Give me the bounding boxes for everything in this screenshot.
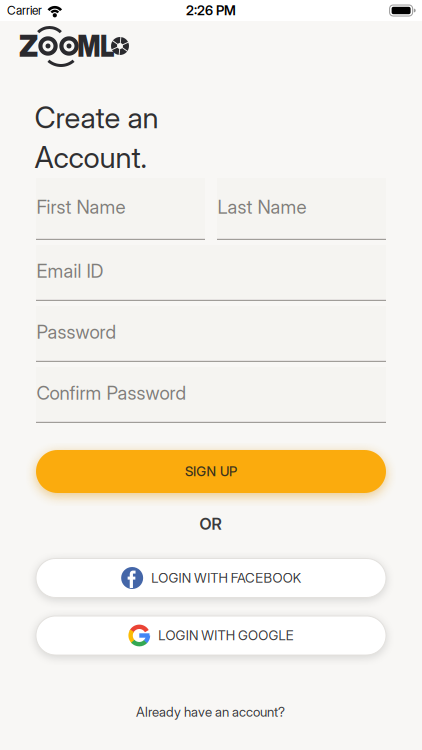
staticText: SIGN UP xyxy=(185,464,237,479)
staticText: Already have an account? xyxy=(136,704,285,720)
button[interactable]: SIGN UP xyxy=(36,450,386,493)
staticText: OR xyxy=(199,515,221,533)
staticText: Password xyxy=(36,321,116,343)
staticText: 2:26 PM xyxy=(186,3,236,18)
button[interactable]: Already have an account? xyxy=(136,704,285,720)
staticText: Create an Account. xyxy=(34,100,158,175)
button[interactable]: LOGIN WITH GOOGLE xyxy=(36,616,386,655)
staticText: ML xyxy=(74,29,118,63)
staticText: Z xyxy=(19,29,38,63)
staticText: LOGIN WITH GOOGLE xyxy=(158,628,294,643)
staticText: Email ID xyxy=(36,260,103,282)
staticText: First Name xyxy=(36,196,125,218)
staticText: Last Name xyxy=(217,196,306,218)
staticText: LOGIN WITH FACEBOOK xyxy=(151,570,301,586)
staticText: Confirm Password xyxy=(36,382,186,404)
button[interactable]: LOGIN WITH FACEBOOK xyxy=(36,558,386,597)
staticText: Carrier xyxy=(7,3,42,18)
